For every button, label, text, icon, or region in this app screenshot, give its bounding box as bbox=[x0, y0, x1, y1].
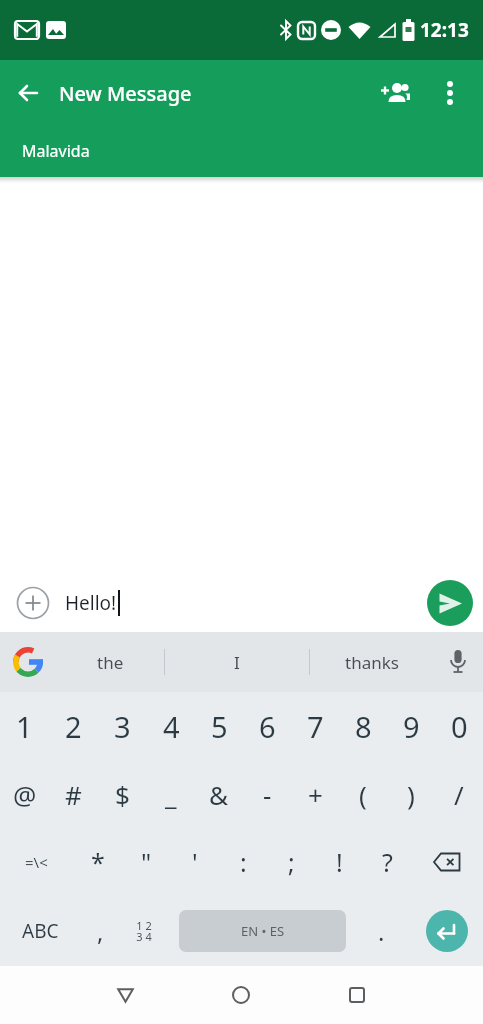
staticText: ; bbox=[288, 845, 295, 879]
button[interactable] bbox=[411, 828, 483, 896]
staticText: ! bbox=[336, 845, 343, 879]
staticText: ( bbox=[359, 777, 367, 812]
button[interactable]: / bbox=[435, 760, 483, 828]
staticText: I bbox=[234, 651, 240, 674]
staticText: & bbox=[209, 777, 229, 812]
staticText: ' bbox=[192, 845, 198, 879]
staticText: 7 bbox=[307, 707, 324, 746]
button[interactable] bbox=[0, 632, 56, 692]
staticText: 8 bbox=[355, 707, 372, 746]
button[interactable]: _ bbox=[147, 760, 195, 828]
button[interactable]: @ bbox=[0, 760, 49, 828]
button[interactable]: $ bbox=[98, 760, 147, 828]
staticText: ABC bbox=[22, 918, 59, 944]
staticText: Malavida bbox=[22, 140, 90, 162]
button[interactable]: ' bbox=[171, 828, 219, 896]
staticText: @ bbox=[13, 777, 37, 812]
button[interactable] bbox=[299, 966, 415, 1024]
button[interactable]: - bbox=[243, 760, 291, 828]
button[interactable]: 8 bbox=[339, 692, 387, 760]
button[interactable]: & bbox=[195, 760, 243, 828]
button[interactable] bbox=[433, 76, 467, 110]
staticText: _ bbox=[165, 777, 177, 812]
staticText: Hello! bbox=[65, 590, 117, 616]
staticText: 2 bbox=[65, 707, 82, 746]
staticText: 6 bbox=[259, 707, 276, 746]
staticText: =\< bbox=[25, 852, 48, 872]
staticText: * bbox=[91, 845, 105, 879]
staticText: + bbox=[308, 777, 323, 812]
button[interactable]: the bbox=[56, 632, 164, 692]
staticText: EN • ES bbox=[241, 922, 285, 940]
staticText: ? bbox=[382, 845, 393, 879]
button[interactable]: ) bbox=[387, 760, 435, 828]
button[interactable]: ! bbox=[315, 828, 363, 896]
button[interactable]: 5 bbox=[195, 692, 243, 760]
button[interactable]: . bbox=[351, 896, 411, 966]
staticText: . bbox=[378, 915, 385, 948]
button[interactable]: , bbox=[80, 896, 121, 966]
staticText: # bbox=[65, 777, 82, 812]
button[interactable]: 6 bbox=[243, 692, 291, 760]
staticText: thanks bbox=[345, 651, 399, 674]
button[interactable]: I bbox=[165, 632, 309, 692]
button[interactable]: 2 bbox=[49, 692, 98, 760]
button[interactable] bbox=[373, 71, 417, 115]
staticText: 1 bbox=[16, 707, 33, 746]
staticText: , bbox=[97, 915, 104, 948]
button[interactable]: 1 2 3 4 bbox=[121, 896, 166, 966]
button[interactable] bbox=[433, 632, 483, 692]
button[interactable]: 9 bbox=[387, 692, 435, 760]
staticText: : bbox=[240, 845, 247, 879]
staticText: 1 2 3 4 bbox=[136, 918, 152, 945]
button[interactable] bbox=[427, 580, 473, 626]
button[interactable] bbox=[16, 586, 50, 620]
button[interactable]: EN • ES bbox=[179, 896, 346, 966]
staticText: " bbox=[141, 845, 152, 879]
staticText: 4 bbox=[163, 707, 180, 746]
button[interactable]: ? bbox=[363, 828, 411, 896]
staticText: the bbox=[97, 651, 124, 674]
button[interactable]: 7 bbox=[291, 692, 339, 760]
button[interactable]: # bbox=[49, 760, 98, 828]
button[interactable]: " bbox=[122, 828, 171, 896]
button[interactable]: 3 bbox=[98, 692, 147, 760]
button[interactable] bbox=[411, 896, 483, 966]
button[interactable] bbox=[67, 966, 183, 1024]
button[interactable]: + bbox=[291, 760, 339, 828]
button[interactable]: 1 bbox=[0, 692, 49, 760]
button[interactable]: thanks bbox=[310, 632, 433, 692]
button[interactable] bbox=[183, 966, 299, 1024]
staticText: $ bbox=[115, 777, 130, 812]
staticText: 0 bbox=[451, 707, 468, 746]
button[interactable]: 4 bbox=[147, 692, 195, 760]
staticText: 3 bbox=[114, 707, 131, 746]
button[interactable]: ; bbox=[267, 828, 315, 896]
staticText: ) bbox=[407, 777, 415, 812]
button[interactable]: ABC bbox=[0, 896, 80, 966]
staticText: New Message bbox=[59, 80, 192, 107]
button[interactable]: ( bbox=[339, 760, 387, 828]
button[interactable]: : bbox=[219, 828, 267, 896]
button[interactable] bbox=[16, 73, 56, 113]
button[interactable]: 0 bbox=[435, 692, 483, 760]
button[interactable]: =\< bbox=[0, 828, 73, 896]
staticText: 12:13 bbox=[420, 17, 469, 43]
staticText: - bbox=[263, 777, 272, 812]
staticText: / bbox=[454, 777, 464, 812]
button[interactable]: * bbox=[73, 828, 122, 896]
staticText: 9 bbox=[403, 707, 420, 746]
staticText: 5 bbox=[211, 707, 228, 746]
